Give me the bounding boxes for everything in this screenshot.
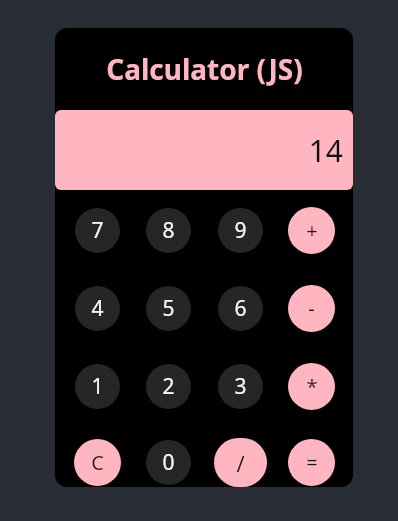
staticText: 0 xyxy=(162,448,175,477)
button[interactable]: 9 xyxy=(218,208,263,253)
staticText: + xyxy=(306,217,318,244)
staticText: C xyxy=(91,449,104,476)
button[interactable]: - xyxy=(288,285,335,332)
staticText: 8 xyxy=(162,216,175,245)
button[interactable]: * xyxy=(288,363,335,410)
button[interactable]: = xyxy=(288,439,335,486)
staticText: / xyxy=(236,448,245,478)
staticText: Calculator (JS) xyxy=(106,50,303,88)
staticText: 1 xyxy=(91,372,104,401)
button[interactable]: 5 xyxy=(146,286,191,331)
button[interactable]: 1 xyxy=(75,364,120,409)
button[interactable]: 3 xyxy=(218,364,263,409)
staticText: = xyxy=(306,449,318,476)
staticText: 5 xyxy=(162,294,175,323)
button[interactable]: 4 xyxy=(75,286,120,331)
staticText: 2 xyxy=(162,372,175,401)
staticText: 3 xyxy=(234,372,247,401)
staticText: 4 xyxy=(91,294,104,323)
button[interactable]: C xyxy=(74,439,121,486)
button[interactable]: 8 xyxy=(146,208,191,253)
button[interactable]: + xyxy=(288,207,335,254)
button[interactable]: / xyxy=(214,438,267,487)
staticText: 14 xyxy=(308,130,343,171)
button[interactable]: 2 xyxy=(146,364,191,409)
staticText: 7 xyxy=(91,216,104,245)
button[interactable]: 6 xyxy=(218,286,263,331)
button[interactable]: 7 xyxy=(75,208,120,253)
staticText: * xyxy=(306,373,318,400)
staticText: 9 xyxy=(234,216,247,245)
staticText: - xyxy=(308,295,315,322)
button[interactable]: 0 xyxy=(146,440,191,485)
staticText: 6 xyxy=(234,294,247,323)
